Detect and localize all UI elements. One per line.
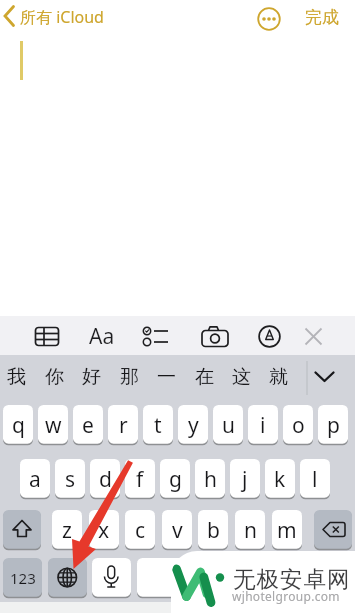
- button[interactable]: j: [230, 459, 260, 499]
- button[interactable]: [48, 558, 87, 598]
- button[interactable]: x: [89, 510, 119, 550]
- button[interactable]: Aa: [86, 321, 117, 351]
- button[interactable]: 所有 iCloud: [0, 2, 118, 32]
- button[interactable]: [3, 510, 41, 550]
- button[interactable]: 一: [152, 360, 180, 394]
- staticText: v: [172, 516, 183, 545]
- button[interactable]: [33, 324, 61, 349]
- button[interactable]: 我: [2, 360, 30, 394]
- staticText: 好: [82, 365, 101, 389]
- staticText: t: [154, 411, 162, 440]
- staticText: 那: [120, 365, 139, 389]
- button[interactable]: g: [160, 459, 190, 499]
- button[interactable]: b: [198, 510, 228, 550]
- button[interactable]: 在: [190, 360, 218, 394]
- button[interactable]: u: [213, 405, 243, 445]
- staticText: 就: [269, 365, 288, 389]
- button[interactable]: y: [178, 405, 208, 445]
- button[interactable]: k: [265, 459, 295, 499]
- button[interactable]: l: [300, 459, 330, 499]
- button[interactable]: [314, 510, 352, 550]
- staticText: o: [292, 411, 305, 440]
- button[interactable]: o: [283, 405, 313, 445]
- staticText: 这: [232, 365, 251, 389]
- button[interactable]: [257, 324, 282, 349]
- button[interactable]: r: [108, 405, 138, 445]
- button[interactable]: t: [143, 405, 173, 445]
- staticText: f: [136, 465, 144, 494]
- staticText: e: [82, 411, 94, 440]
- staticText: d: [99, 465, 112, 494]
- button[interactable]: [92, 558, 131, 598]
- button[interactable]: m: [272, 510, 302, 550]
- button[interactable]: n: [235, 510, 265, 550]
- button[interactable]: 那: [115, 360, 143, 394]
- button[interactable]: d: [90, 459, 120, 499]
- staticText: s: [65, 465, 76, 494]
- button[interactable]: v: [162, 510, 192, 550]
- staticText: b: [207, 516, 220, 545]
- button[interactable]: 就: [264, 360, 292, 394]
- button[interactable]: [137, 558, 263, 598]
- button[interactable]: c: [125, 510, 155, 550]
- button[interactable]: [257, 7, 281, 31]
- button[interactable]: w: [38, 405, 68, 445]
- button[interactable]: h: [195, 459, 225, 499]
- staticText: y: [188, 411, 199, 440]
- staticText: i: [260, 411, 266, 440]
- staticText: x: [98, 516, 110, 545]
- button[interactable]: z: [52, 510, 82, 550]
- button[interactable]: 这: [227, 360, 255, 394]
- staticText: u: [222, 411, 235, 440]
- staticText: c: [135, 516, 146, 545]
- button[interactable]: q: [3, 405, 33, 445]
- staticText: k: [274, 465, 286, 494]
- button[interactable]: [303, 326, 324, 347]
- button[interactable]: f: [125, 459, 155, 499]
- staticText: 在: [195, 365, 214, 389]
- button[interactable]: 完成: [295, 4, 349, 30]
- button[interactable]: i: [248, 405, 278, 445]
- button[interactable]: [141, 324, 171, 349]
- button[interactable]: 123: [3, 558, 42, 598]
- staticText: l: [312, 465, 318, 494]
- staticText: 无极安卓网: [233, 565, 351, 593]
- staticText: wjhotelgroup.com: [232, 588, 340, 604]
- staticText: 一: [157, 365, 176, 389]
- button[interactable]: a: [20, 459, 50, 499]
- button[interactable]: 好: [77, 360, 105, 394]
- button[interactable]: [296, 356, 355, 398]
- staticText: n: [244, 516, 257, 545]
- staticText: 所有 iCloud: [20, 6, 104, 28]
- staticText: 我: [7, 365, 26, 389]
- staticText: j: [242, 465, 248, 494]
- button[interactable]: [199, 324, 231, 349]
- staticText: 123: [10, 568, 36, 588]
- button[interactable]: [269, 558, 353, 598]
- button[interactable]: s: [55, 459, 85, 499]
- staticText: q: [12, 411, 25, 440]
- staticText: h: [204, 465, 217, 494]
- button[interactable]: e: [73, 405, 103, 445]
- staticText: z: [62, 516, 72, 545]
- staticText: 你: [45, 365, 64, 389]
- button[interactable]: p: [318, 405, 348, 445]
- staticText: a: [29, 465, 41, 494]
- staticText: w: [45, 411, 62, 440]
- staticText: Aa: [89, 322, 115, 351]
- staticText: p: [327, 411, 340, 440]
- staticText: g: [169, 465, 182, 494]
- staticText: m: [277, 516, 297, 545]
- button[interactable]: 你: [40, 360, 68, 394]
- staticText: 完成: [305, 7, 339, 28]
- staticText: r: [119, 411, 128, 440]
